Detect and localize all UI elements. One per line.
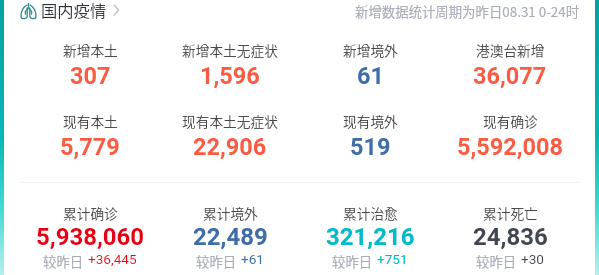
staticText: 较昨日 bbox=[196, 251, 237, 270]
staticText: 1,596 bbox=[200, 62, 260, 90]
staticText: 现有本土 bbox=[63, 111, 118, 131]
staticText: 现有本土无症状 bbox=[182, 111, 278, 131]
staticText: 新增数据统计周期为昨日08.31 0-24时 bbox=[355, 1, 580, 20]
staticText: +61 bbox=[241, 251, 264, 267]
staticText: 港澳台新增 bbox=[476, 40, 545, 60]
button[interactable]: 现有本土 bbox=[20, 111, 160, 165]
staticText: 307 bbox=[70, 62, 111, 90]
staticText: 22,489 bbox=[193, 223, 268, 251]
staticText: 较昨日 bbox=[332, 251, 373, 270]
staticText: 现有境外 bbox=[343, 111, 398, 131]
staticText: +751 bbox=[377, 251, 408, 267]
button[interactable]: 累计治愈 bbox=[300, 203, 440, 275]
button[interactable]: 现有本土无症状 bbox=[160, 111, 300, 165]
staticText: 累计治愈 bbox=[343, 203, 398, 223]
button[interactable]: 现有确诊 bbox=[440, 111, 580, 165]
staticText: 36,077 bbox=[473, 62, 547, 90]
button[interactable]: 新增境外 bbox=[300, 40, 440, 111]
staticText: 新增本土 bbox=[63, 40, 118, 60]
staticText: 5,592,008 bbox=[457, 133, 563, 161]
staticText: 累计死亡 bbox=[483, 203, 538, 223]
staticText: 61 bbox=[357, 62, 384, 90]
staticText: 321,216 bbox=[326, 223, 415, 251]
staticText: 24,836 bbox=[473, 223, 548, 251]
staticText: 累计境外 bbox=[203, 203, 258, 223]
staticText: 新增本土无症状 bbox=[182, 40, 278, 60]
button[interactable]: 新增本土无症状 bbox=[160, 40, 300, 111]
staticText: 较昨日 bbox=[476, 251, 517, 270]
button[interactable]: 现有境外 bbox=[300, 111, 440, 165]
staticText: +30 bbox=[521, 251, 544, 267]
staticText: 国内疫情 bbox=[41, 0, 107, 22]
other: Domestic epidemic bbox=[18, 1, 39, 22]
staticText: 519 bbox=[350, 133, 391, 161]
button[interactable]: 新增本土 bbox=[20, 40, 160, 111]
staticText: +36,445 bbox=[88, 251, 137, 267]
button[interactable]: 累计境外 bbox=[160, 203, 300, 275]
staticText: 新增境外 bbox=[343, 40, 398, 60]
button[interactable]: 累计死亡 bbox=[440, 203, 580, 275]
button[interactable]: 港澳台新增 bbox=[440, 40, 580, 111]
button[interactable]: Domestic epidemic bbox=[20, 0, 124, 22]
staticText: 较昨日 bbox=[43, 251, 84, 270]
staticText: 5,779 bbox=[60, 133, 120, 161]
button[interactable]: 累计确诊 bbox=[20, 203, 160, 275]
staticText: 5,938,060 bbox=[36, 223, 145, 251]
staticText: 22,906 bbox=[193, 133, 267, 161]
staticText: 累计确诊 bbox=[63, 203, 118, 223]
staticText: 现有确诊 bbox=[483, 111, 538, 131]
